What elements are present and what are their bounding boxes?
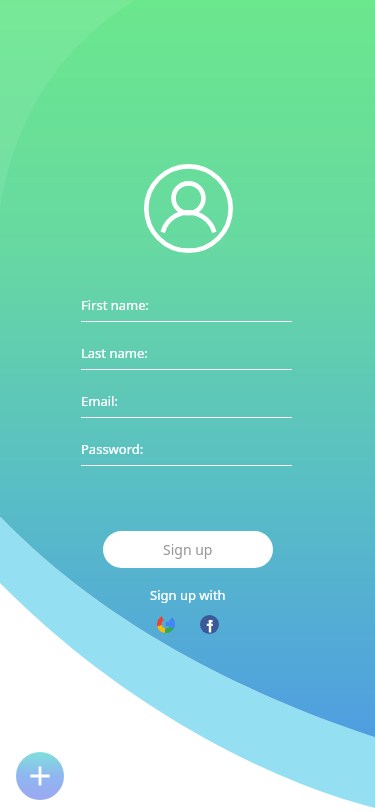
staticText: First name: (81, 296, 150, 314)
button[interactable]: Add (16, 752, 64, 800)
button[interactable]: Password: (81, 440, 292, 466)
button[interactable]: Sign up with Google (155, 613, 177, 635)
button[interactable]: Sign up with Facebook (198, 613, 220, 635)
button[interactable]: Last name: (81, 344, 292, 370)
staticText: Sign up with (150, 586, 226, 604)
button[interactable]: First name: (81, 296, 292, 322)
button[interactable]: Sign up (103, 531, 273, 568)
staticText: Password: (81, 440, 144, 458)
staticText: Last name: (81, 344, 148, 362)
staticText: Sign up (163, 540, 213, 559)
staticText: Email: (81, 392, 118, 410)
button[interactable]: Email: (81, 392, 292, 418)
